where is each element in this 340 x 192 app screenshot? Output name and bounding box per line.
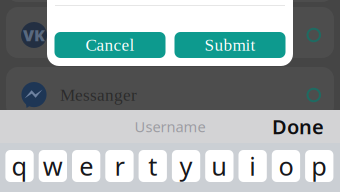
button[interactable]: o xyxy=(272,150,300,182)
staticText: t xyxy=(148,149,157,183)
staticText: p xyxy=(311,149,327,183)
staticText: q xyxy=(12,149,28,183)
button[interactable]: Messanger xyxy=(6,67,334,118)
staticText: Messanger xyxy=(60,85,137,104)
staticText: e xyxy=(79,149,93,183)
staticText: r xyxy=(114,149,124,183)
staticText: o xyxy=(278,149,293,183)
button[interactable]: Submit xyxy=(174,32,285,58)
button[interactable]: Cancel xyxy=(54,32,165,58)
button[interactable]: t xyxy=(139,150,167,182)
staticText: u xyxy=(211,149,227,183)
button[interactable]: Done xyxy=(262,110,334,143)
button[interactable]: e xyxy=(72,150,100,182)
button[interactable]: y xyxy=(172,150,200,182)
staticText: Cancel xyxy=(85,35,134,54)
button[interactable]: q xyxy=(5,150,34,182)
staticText: VK xyxy=(60,25,84,44)
button[interactable]: p xyxy=(305,150,333,182)
staticText: Username xyxy=(134,117,205,136)
button[interactable]: i xyxy=(238,150,267,182)
staticText: Submit xyxy=(204,35,255,54)
button[interactable]: VK xyxy=(6,7,334,58)
staticText: w xyxy=(43,149,63,183)
button[interactable]: u xyxy=(205,150,233,182)
staticText: Done xyxy=(272,113,324,140)
staticText: VK xyxy=(23,24,45,46)
staticText: y xyxy=(180,149,193,183)
button[interactable]: w xyxy=(39,150,67,182)
button[interactable]: r xyxy=(105,150,134,182)
staticText: i xyxy=(249,149,256,183)
